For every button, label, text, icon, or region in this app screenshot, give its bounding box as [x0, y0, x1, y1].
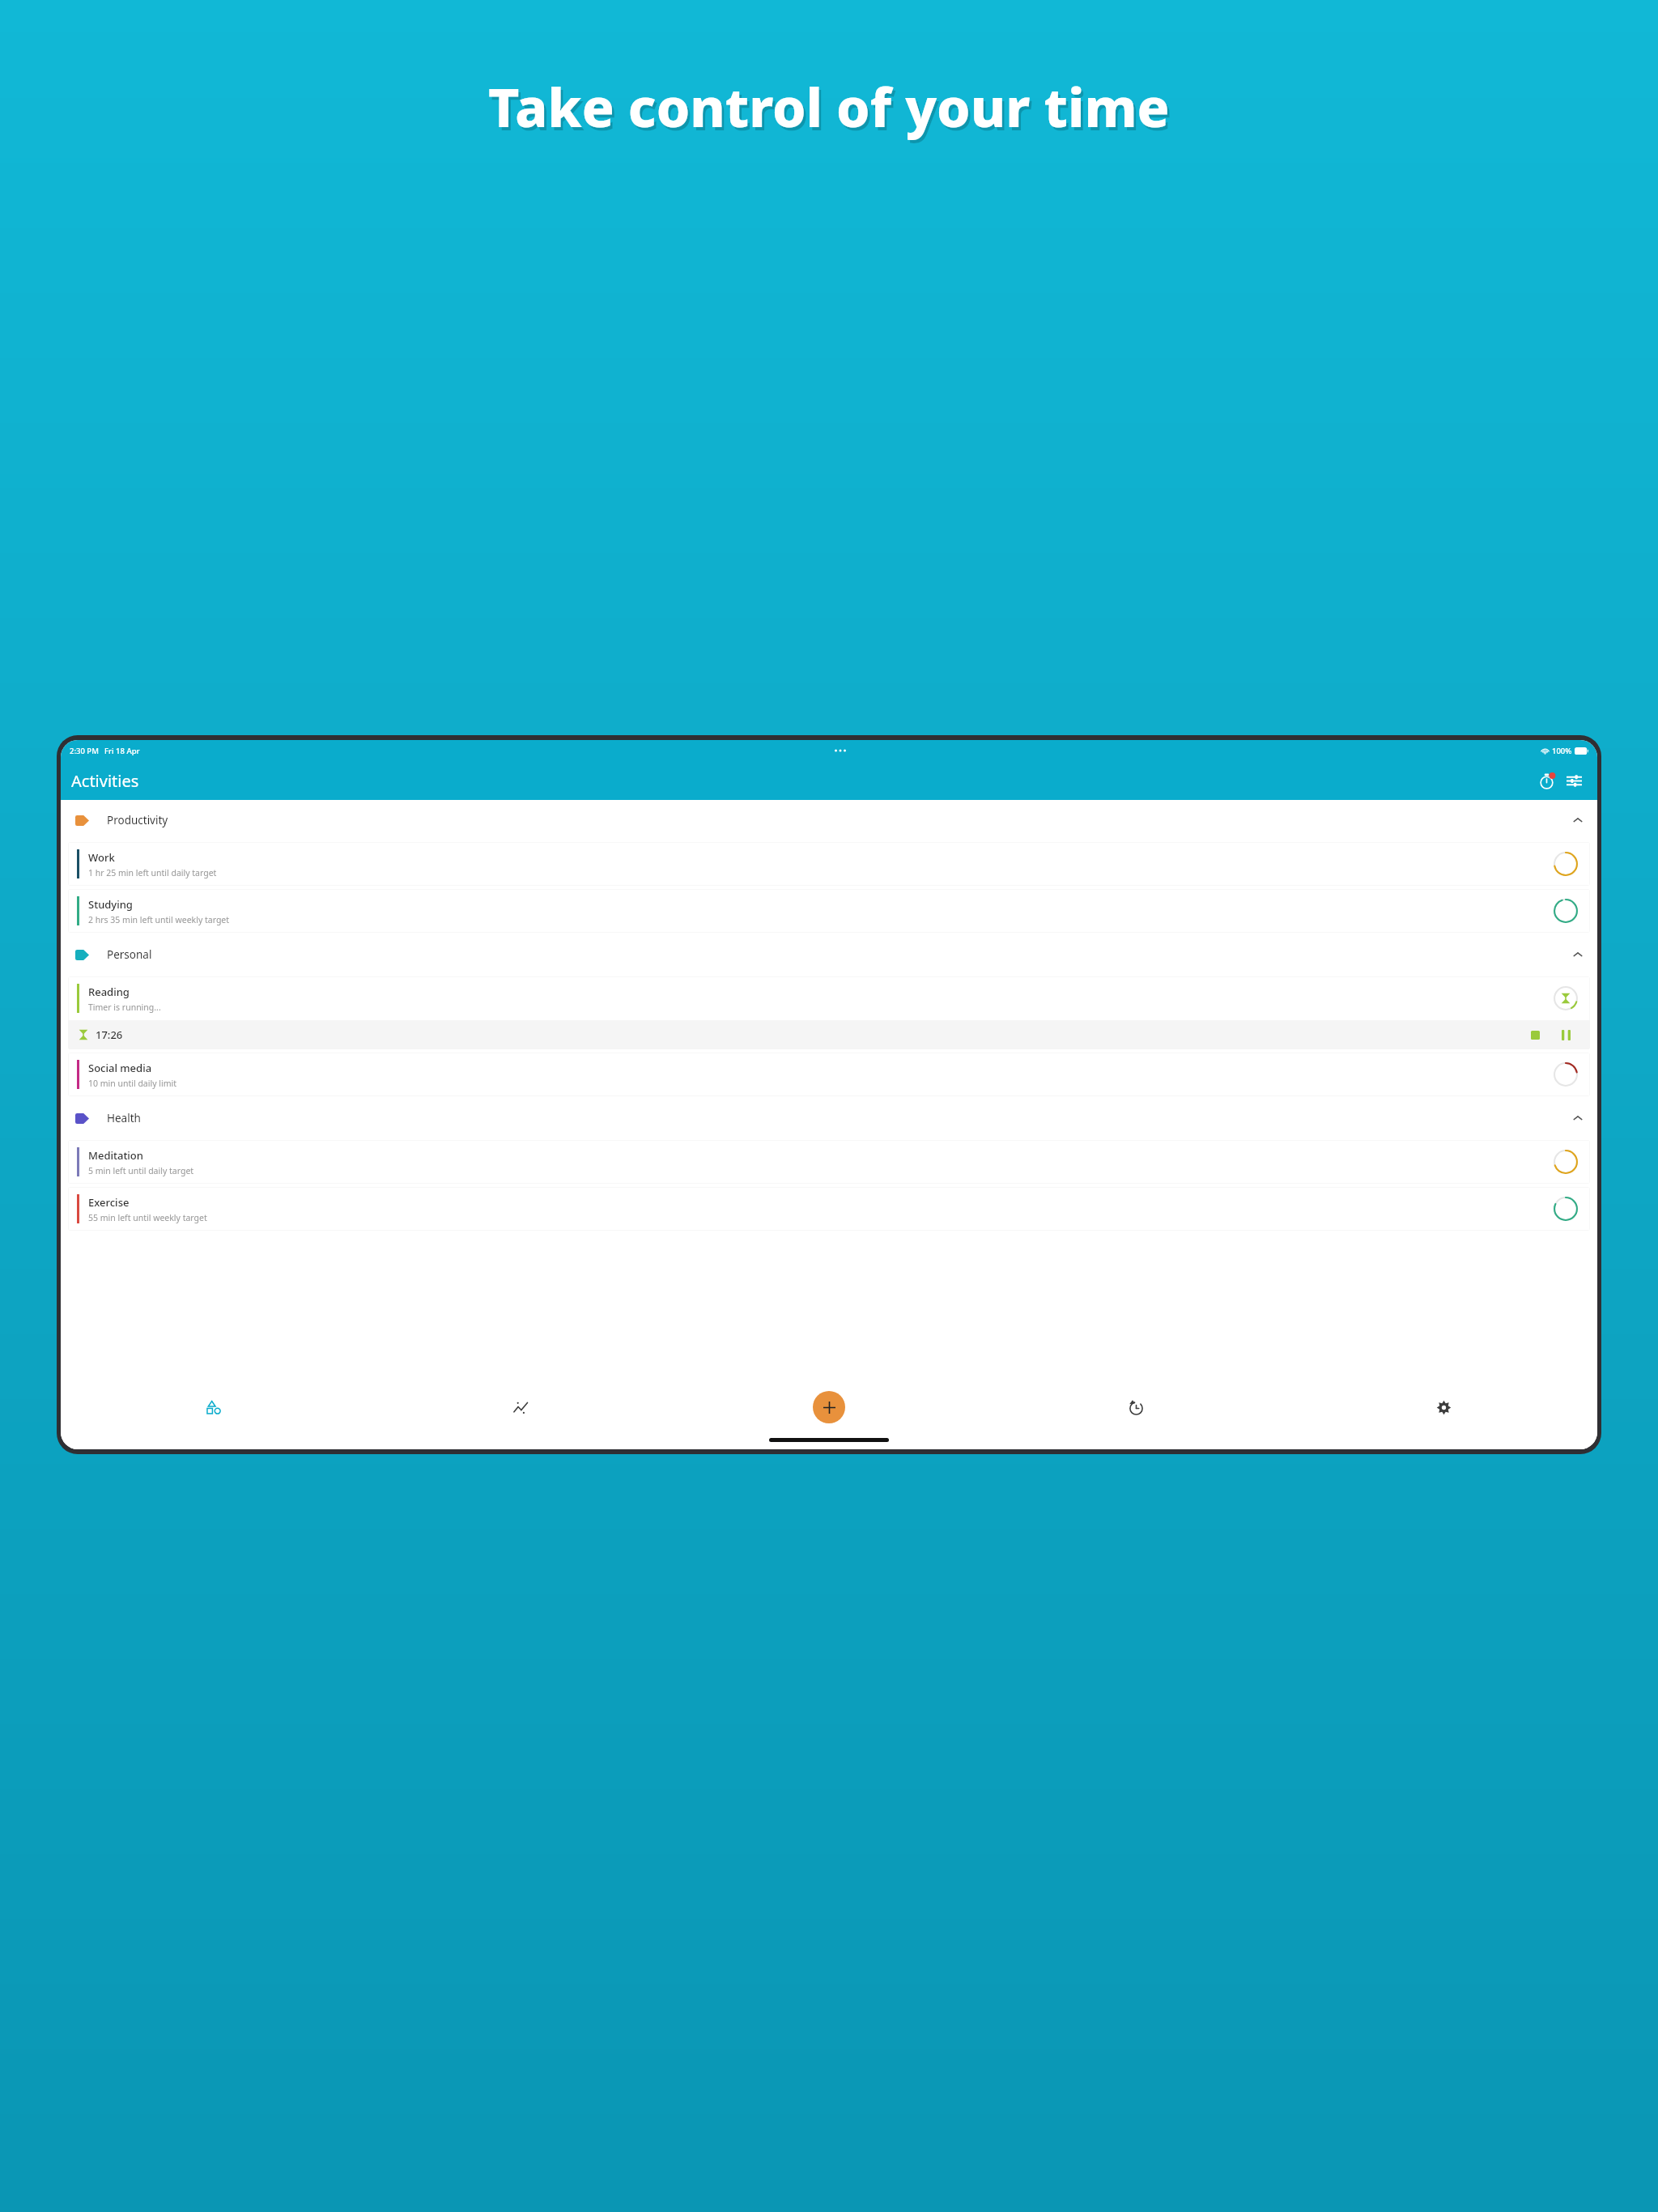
staticText: Productivity — [107, 813, 168, 827]
staticText: 2:30 PM — [70, 746, 99, 756]
staticText: 1 hr 25 min left until daily target — [88, 867, 217, 878]
staticText: Fri 18 Apr — [104, 746, 140, 756]
button[interactable]: Work — [68, 842, 1590, 886]
staticText: Take control of your time — [491, 73, 1172, 146]
staticText: 5 min left until daily target — [88, 1165, 194, 1176]
staticText: Studying — [88, 897, 133, 912]
button[interactable]: Filter settings — [1560, 767, 1588, 794]
button[interactable]: Pause timer — [1554, 1023, 1577, 1046]
button[interactable]: Settings — [1290, 1386, 1597, 1428]
staticText: Exercise — [88, 1195, 130, 1210]
button[interactable]: History — [982, 1386, 1290, 1428]
staticText: 55 min left until weekly target — [88, 1212, 207, 1223]
staticText: Social media — [88, 1061, 152, 1075]
button[interactable]: Exercise — [68, 1187, 1590, 1231]
button[interactable]: Add activity — [813, 1391, 845, 1423]
button[interactable]: Social media — [68, 1053, 1590, 1096]
staticText: Activities — [71, 770, 139, 792]
staticText: 10 min until daily limit — [88, 1078, 176, 1089]
staticText: Take control of your time — [488, 70, 1170, 143]
staticText: 17:26 — [96, 1027, 123, 1042]
button[interactable]: Categories — [61, 1386, 368, 1428]
button[interactable]: Productivity — [61, 800, 1597, 840]
button[interactable]: Reading — [68, 976, 1590, 1020]
staticText: Work — [88, 850, 115, 865]
button[interactable]: Studying — [68, 889, 1590, 933]
staticText: Meditation — [88, 1148, 143, 1163]
button[interactable]: 17:26 — [68, 1020, 1590, 1049]
button[interactable]: Meditation — [68, 1140, 1590, 1184]
button[interactable]: Health — [61, 1098, 1597, 1138]
staticText: Timer is running... — [88, 1002, 161, 1013]
button[interactable]: Statistics — [368, 1386, 674, 1428]
staticText: 2 hrs 35 min left until weekly target — [88, 914, 230, 925]
staticText: 100% — [1552, 746, 1572, 756]
staticText: Health — [107, 1111, 141, 1125]
button[interactable]: Stop timer — [1524, 1023, 1546, 1046]
button[interactable]: Timers — [1533, 767, 1560, 794]
button[interactable]: Personal — [61, 934, 1597, 975]
staticText: Personal — [107, 947, 152, 962]
staticText: Reading — [88, 985, 130, 999]
